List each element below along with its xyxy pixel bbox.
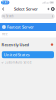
- staticText: Select Server: [14, 6, 38, 12]
- button[interactable]: Add server: [46, 5, 51, 13]
- staticText: 9:41: [2, 1, 9, 4]
- button[interactable]: Search: [0, 13, 56, 23]
- button[interactable]: Back: [0, 5, 6, 13]
- staticText: United States: [4, 52, 30, 57]
- button[interactable]: United States: [0, 51, 56, 58]
- button[interactable]: Fastest Server: [0, 23, 56, 31]
- staticText: Recently Used: [2, 42, 30, 47]
- button[interactable]: Custom Auto Select: [0, 61, 56, 64]
- button[interactable]: Settings: [51, 5, 55, 13]
- staticText: Fastest Server: [7, 24, 34, 30]
- staticText: Free: [2, 32, 8, 36]
- staticText: Custom Auto Select: [4, 61, 31, 64]
- staticText: Search: [6, 14, 14, 18]
